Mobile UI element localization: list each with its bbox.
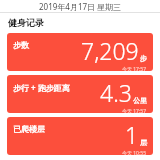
- staticText: 2019年4月17日 星期三: [39, 1, 122, 12]
- button[interactable]: 步行 + 跑步距离: [7, 75, 153, 113]
- staticText: 今天 10:55: [121, 150, 146, 155]
- staticText: 公里: [133, 96, 147, 105]
- staticText: 今天 17:57: [121, 108, 146, 113]
- staticText: 1: [125, 119, 139, 150]
- staticText: 已爬楼层: [13, 124, 45, 134]
- button[interactable]: 已爬楼层: [7, 117, 153, 155]
- staticText: 步数: [13, 40, 29, 50]
- staticText: 步行 + 跑步距离: [13, 82, 70, 93]
- staticText: 步: [140, 54, 147, 63]
- staticText: 4.3: [100, 77, 132, 108]
- button[interactable]: 步数: [7, 33, 153, 71]
- staticText: 层: [140, 138, 147, 147]
- staticText: 7,209: [81, 35, 139, 66]
- staticText: 健身记录: [8, 17, 44, 28]
- staticText: 今天 17:57: [121, 66, 146, 71]
